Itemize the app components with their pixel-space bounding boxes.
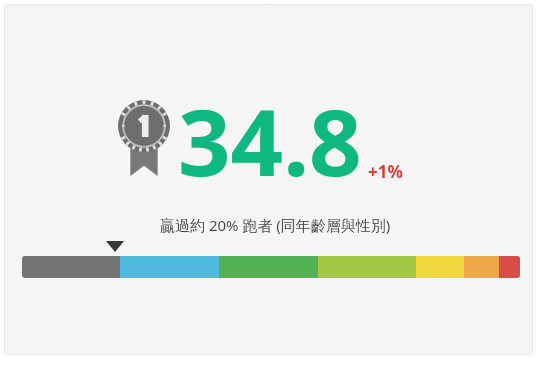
other: Running Quotient badge xyxy=(118,100,170,176)
button[interactable]: Running Quotient badge xyxy=(4,4,533,355)
staticText: 34.8 xyxy=(178,78,362,203)
staticText: 贏過約 20% 跑者 (同年齡層與性別) xyxy=(160,215,391,235)
staticText: +1% xyxy=(368,160,403,183)
button[interactable] xyxy=(22,256,520,278)
